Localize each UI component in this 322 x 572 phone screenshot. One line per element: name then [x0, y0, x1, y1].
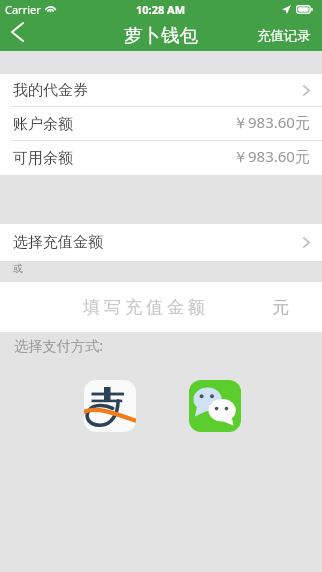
button[interactable]: Alipay: [84, 380, 136, 432]
staticText: 10:28 AM: [136, 2, 186, 17]
staticText: Carrier: [5, 2, 41, 17]
button[interactable]: 选择充值金额: [0, 224, 322, 261]
button[interactable]: WeChat: [189, 380, 241, 432]
button[interactable]: 充值记录: [257, 27, 322, 44]
button[interactable]: 我的代金券: [0, 74, 322, 107]
staticText: ￥983.60元: [233, 112, 310, 132]
button[interactable]: 账户余额: [0, 107, 322, 141]
button[interactable]: Back: [0, 20, 34, 51]
button[interactable]: 可用余额: [0, 141, 322, 175]
staticText: 我的代金券: [13, 81, 88, 100]
staticText: 选择充值金额: [13, 233, 103, 252]
staticText: 充值记录: [257, 27, 311, 44]
staticText: 选择支付方式:: [14, 336, 103, 355]
staticText: 或: [13, 262, 23, 275]
staticText: 可用余额: [13, 149, 73, 168]
staticText: 萝卜钱包: [124, 24, 198, 47]
staticText: 元: [272, 297, 289, 318]
staticText: 账户余额: [13, 115, 73, 134]
staticText: 填写充值金额: [10, 297, 282, 318]
staticText: ￥983.60元: [233, 146, 310, 166]
